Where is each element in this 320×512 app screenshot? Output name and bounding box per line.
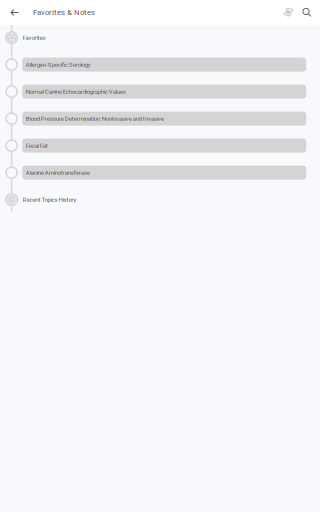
staticText: Alanine Aminotransferase xyxy=(26,169,90,176)
staticText: Allergen-Specific Serology xyxy=(26,61,91,68)
button[interactable]: Sort xyxy=(277,0,299,25)
button[interactable]: Search xyxy=(296,0,318,25)
button[interactable]: Blood Pressure Determination: Noninvasiv… xyxy=(22,112,306,126)
button[interactable]: Alanine Aminotransferase xyxy=(22,166,306,180)
button[interactable]: Fecal Fat xyxy=(22,139,306,153)
staticText: Blood Pressure Determination: Noninvasiv… xyxy=(26,115,164,122)
button[interactable]: Allergen-Specific Serology xyxy=(22,58,306,72)
button[interactable]: Back xyxy=(3,0,27,25)
staticText: Normal Canine Echocardiographic Values xyxy=(26,88,126,95)
button[interactable]: Normal Canine Echocardiographic Values xyxy=(22,85,306,99)
staticText: Favorites & Notes xyxy=(33,8,95,17)
staticText: Fecal Fat xyxy=(26,142,48,149)
staticText: Favorites xyxy=(22,34,45,41)
staticText: Recent Topics History xyxy=(22,196,76,203)
